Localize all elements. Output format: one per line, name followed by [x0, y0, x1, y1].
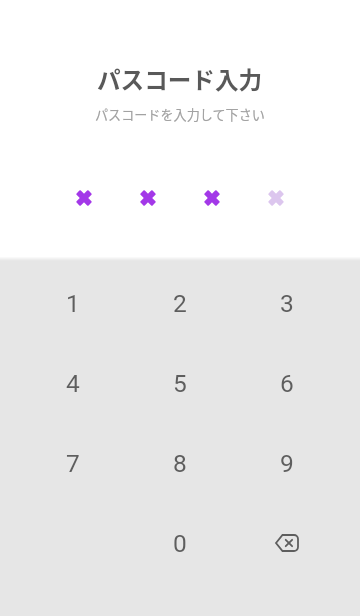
staticText: 7 [66, 449, 80, 478]
button[interactable]: 3 [233, 263, 340, 343]
button[interactable]: 4 [20, 343, 126, 423]
button[interactable] [233, 503, 340, 583]
staticText: 2 [173, 289, 187, 318]
staticText: 5 [173, 369, 187, 398]
button[interactable]: 9 [233, 423, 340, 503]
staticText: 0 [173, 529, 187, 558]
button[interactable]: 0 [126, 503, 233, 583]
staticText: 4 [66, 369, 80, 398]
staticText: 6 [280, 369, 294, 398]
button[interactable]: 6 [233, 343, 340, 423]
button[interactable]: 1 [20, 263, 126, 343]
staticText: 1 [66, 289, 80, 318]
button[interactable]: 5 [126, 343, 233, 423]
staticText: パスコードを入力して下さい [95, 105, 265, 124]
button[interactable]: 8 [126, 423, 233, 503]
staticText: 9 [280, 449, 294, 478]
staticText: 8 [173, 449, 187, 478]
button[interactable]: 7 [20, 423, 126, 503]
staticText: 3 [280, 289, 294, 318]
button[interactable]: 2 [126, 263, 233, 343]
staticText: パスコード入力 [97, 62, 263, 96]
